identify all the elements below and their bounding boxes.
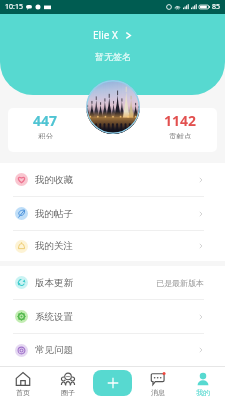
staticText: 我的关注 (35, 240, 73, 252)
button[interactable]: 发布 (93, 370, 132, 396)
staticText: 系统设置 (35, 311, 73, 323)
staticText: 447 (33, 111, 58, 130)
button[interactable]: 消息 (135, 367, 180, 400)
button[interactable]: 447 (0, 111, 90, 139)
staticText: 版本更新 (35, 277, 73, 289)
button[interactable]: Elie X (85, 26, 141, 44)
staticText: Elie X (93, 28, 118, 42)
button[interactable]: 常见问题 (0, 334, 225, 366)
staticText: 首页 (16, 388, 30, 397)
button[interactable]: 圈子 (45, 367, 90, 400)
staticText: 我的收藏 (35, 174, 73, 186)
staticText: 积分 (38, 132, 53, 139)
staticText: 常见问题 (35, 344, 73, 356)
button[interactable]: 1142 (135, 111, 225, 139)
button[interactable]: 版本更新 (0, 266, 225, 299)
button[interactable]: 首页 (0, 367, 45, 400)
button[interactable]: 我的 (180, 367, 225, 400)
button[interactable]: 头像 (86, 80, 140, 134)
staticText: 暂无签名 (95, 51, 131, 62)
button[interactable]: 我的帖子 (0, 197, 225, 230)
staticText: 贡献点 (169, 132, 192, 139)
staticText: 消息 (151, 388, 165, 397)
staticText: 85 (212, 2, 221, 12)
button[interactable]: 系统设置 (0, 300, 225, 333)
button[interactable]: 我的收藏 (0, 163, 225, 196)
button[interactable]: 我的关注 (0, 231, 225, 261)
staticText: 1142 (164, 111, 197, 130)
staticText: 我的帖子 (35, 208, 73, 220)
staticText: 圈子 (61, 388, 75, 397)
staticText: 10:15 (5, 2, 23, 12)
staticText: 已是最新版本 (156, 278, 204, 288)
staticText: 我的 (196, 388, 210, 397)
